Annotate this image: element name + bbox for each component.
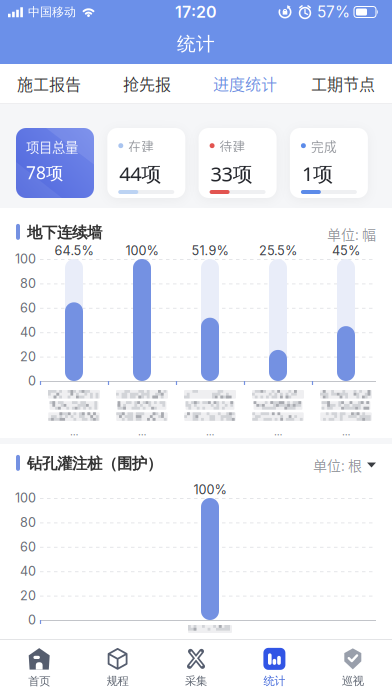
- button[interactable]: 在建: [107, 128, 185, 198]
- staticText: 100: [15, 490, 36, 506]
- staticText: 60: [20, 300, 36, 315]
- staticText: 工期节点: [311, 72, 375, 95]
- staticText: 44项: [119, 160, 161, 187]
- staticText: 80: [20, 515, 36, 530]
- button[interactable]: 巡视: [314, 640, 392, 696]
- button[interactable]: 统计: [235, 640, 314, 696]
- staticText: 80: [20, 276, 36, 291]
- staticText: 中国移动: [28, 4, 76, 19]
- staticText: 统计: [177, 32, 215, 56]
- staticText: 64.5%: [54, 243, 93, 258]
- button[interactable]: 选择单位: [313, 455, 376, 475]
- button[interactable]: 抢先报: [98, 64, 196, 103]
- staticText: 51.9%: [191, 243, 228, 258]
- staticText: 20: [20, 588, 36, 603]
- button[interactable]: 项目总量: [16, 128, 94, 198]
- staticText: 进度统计: [213, 72, 277, 95]
- staticText: 钻孔灌注桩（围护）: [27, 454, 162, 473]
- staticText: 在建: [128, 136, 154, 155]
- staticText: 57%: [317, 3, 350, 21]
- staticText: 60: [20, 539, 36, 554]
- staticText: 100%: [193, 482, 226, 497]
- button[interactable]: 采集: [157, 640, 235, 696]
- staticText: 统计: [263, 674, 285, 688]
- staticText: 40: [20, 324, 36, 340]
- staticText: 25.5%: [259, 243, 297, 258]
- staticText: 单位: 根: [313, 455, 362, 475]
- staticText: …: [70, 424, 78, 438]
- button[interactable]: 进度统计: [196, 64, 294, 103]
- staticText: 100: [15, 251, 36, 267]
- staticText: …: [342, 424, 350, 438]
- staticText: 78项: [26, 161, 63, 184]
- staticText: 项目总量: [26, 137, 78, 156]
- staticText: 40: [20, 563, 36, 579]
- staticText: 规程: [107, 674, 129, 688]
- staticText: 待建: [220, 136, 246, 155]
- button[interactable]: 施工报告: [0, 64, 98, 103]
- staticText: 首页: [28, 674, 50, 688]
- staticText: 单位: 幅: [327, 224, 376, 244]
- button[interactable]: 工期节点: [294, 64, 392, 103]
- staticText: …: [138, 424, 146, 438]
- staticText: 1项: [302, 160, 333, 187]
- staticText: 完成: [311, 136, 337, 155]
- button[interactable]: 待建: [199, 128, 277, 198]
- staticText: 巡视: [342, 674, 364, 688]
- staticText: 0: [28, 612, 36, 628]
- button[interactable]: 规程: [78, 640, 157, 696]
- staticText: 抢先报: [123, 72, 171, 95]
- staticText: 33项: [211, 160, 253, 187]
- staticText: …: [274, 424, 282, 438]
- staticText: …: [206, 424, 214, 438]
- staticText: 0: [28, 373, 36, 389]
- staticText: 采集: [185, 674, 207, 688]
- button[interactable]: 完成: [290, 128, 368, 198]
- staticText: 100%: [125, 243, 158, 258]
- staticText: 20: [20, 349, 36, 364]
- staticText: 45%: [332, 243, 360, 258]
- button[interactable]: 首页: [0, 640, 78, 696]
- staticText: 施工报告: [17, 72, 81, 95]
- staticText: 地下连续墙: [27, 223, 102, 242]
- staticText: 17:20: [175, 2, 217, 22]
